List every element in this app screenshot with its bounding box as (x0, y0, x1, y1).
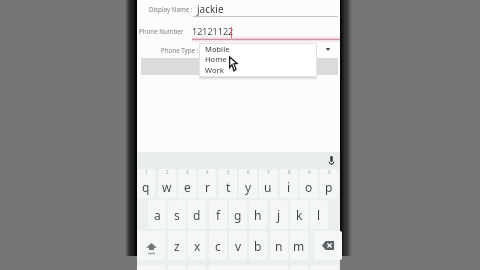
button[interactable]: a (148, 200, 166, 229)
staticText: jackie (197, 2, 224, 16)
staticText: n (275, 238, 283, 254)
staticText: Mobile (205, 44, 230, 54)
staticText: b (254, 238, 262, 254)
staticText: d (193, 207, 201, 223)
button[interactable]: b (249, 231, 267, 260)
staticText: 4 (206, 169, 209, 175)
staticText: t (226, 179, 231, 195)
button[interactable]: Open phone type dropdown (320, 43, 334, 56)
button[interactable]: v (229, 231, 247, 260)
staticText: c (215, 238, 221, 254)
staticText: 5 (227, 169, 230, 175)
staticText: Phone Number (139, 27, 184, 35)
button[interactable]: j (270, 200, 288, 229)
button[interactable]: Backspace (314, 231, 342, 260)
staticText: 0 (328, 169, 331, 175)
staticText: 2 (166, 169, 169, 175)
staticText: o (305, 179, 313, 195)
staticText: 8 (288, 169, 291, 175)
staticText: r (205, 179, 210, 195)
button[interactable]: 6 (239, 169, 257, 198)
staticText: i (287, 179, 291, 195)
button[interactable]: Shift (137, 231, 165, 260)
staticText: a (154, 207, 161, 223)
staticText: m (293, 238, 305, 254)
button[interactable]: c (209, 231, 227, 260)
staticText: q (142, 179, 150, 195)
button[interactable]: g (229, 200, 247, 229)
button[interactable]: 9 (300, 169, 318, 198)
button[interactable]: 1 (137, 169, 155, 198)
button[interactable]: 7 (259, 169, 277, 198)
button[interactable]: s (168, 200, 186, 229)
button[interactable]: m (290, 231, 308, 260)
staticText: l (317, 207, 321, 223)
button[interactable]: h (249, 200, 267, 229)
staticText: s (174, 207, 180, 223)
button[interactable]: Mobile (199, 45, 317, 56)
staticText: Display Name : (149, 5, 193, 13)
button[interactable]: Voice input (324, 153, 338, 167)
button[interactable]: 2 (158, 169, 176, 198)
button[interactable]: d (188, 200, 206, 229)
button[interactable]: 3 (178, 169, 196, 198)
button[interactable]: Home (199, 55, 317, 66)
staticText: h (254, 207, 262, 223)
staticText: f (216, 207, 221, 223)
staticText: u (264, 179, 272, 195)
button[interactable]: n (270, 231, 288, 260)
staticText: 7 (267, 169, 270, 175)
staticText: p (325, 179, 333, 195)
staticText: x (194, 238, 201, 254)
staticText: y (245, 179, 252, 195)
staticText: e (184, 179, 191, 195)
staticText: 12121122 (192, 25, 234, 37)
staticText: w (162, 179, 172, 195)
button[interactable]: Work (199, 66, 317, 77)
staticText: Work (205, 65, 224, 75)
staticText: Home (205, 54, 227, 64)
button[interactable]: 4 (198, 169, 216, 198)
staticText: g (234, 207, 242, 223)
button[interactable]: 5 (219, 169, 237, 198)
button[interactable]: x (188, 231, 206, 260)
button[interactable]: z (168, 231, 186, 260)
staticText: 9 (308, 169, 311, 175)
button[interactable]: l (310, 200, 328, 229)
staticText: z (174, 238, 180, 254)
button[interactable]: 0 (320, 169, 338, 198)
staticText: 6 (247, 169, 250, 175)
staticText: j (277, 207, 281, 223)
button[interactable]: k (290, 200, 308, 229)
staticText: Phone Type : (161, 46, 199, 54)
staticText: v (235, 238, 242, 254)
button[interactable]: f (209, 200, 227, 229)
button[interactable] (141, 58, 338, 75)
staticText: k (296, 207, 303, 223)
staticText: 1 (145, 169, 148, 175)
staticText: 3 (186, 169, 189, 175)
button[interactable]: 8 (280, 169, 298, 198)
